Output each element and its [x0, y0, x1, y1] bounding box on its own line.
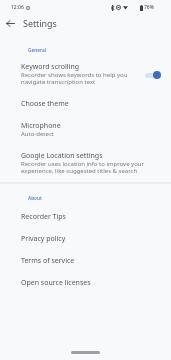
staticText: About	[28, 195, 42, 202]
staticText: Recorder Tips	[21, 212, 66, 222]
staticText: Settings	[23, 17, 57, 29]
button[interactable]: Open source licenses	[0, 272, 171, 294]
button[interactable]: Back	[1, 14, 19, 32]
button[interactable]: Terms of service	[0, 250, 171, 272]
staticText: Microphone	[21, 121, 61, 131]
staticText: Recorder shows keywords to help you navi…	[21, 71, 141, 86]
button[interactable]: Recorder Tips	[0, 202, 171, 228]
button[interactable]: Keyword scrolling	[0, 54, 171, 93]
staticText: 76%	[144, 4, 154, 11]
staticText: Terms of service	[21, 256, 75, 266]
staticText: General	[28, 47, 46, 54]
staticText: Open source licenses	[21, 278, 91, 288]
button[interactable]: Privacy policy	[0, 228, 171, 250]
button[interactable]: Choose theme	[0, 93, 171, 115]
button[interactable]: Microphone	[0, 115, 171, 145]
button[interactable]: Keyword scrolling toggle	[145, 69, 161, 81]
staticText: Google Location settings	[21, 151, 103, 161]
staticText: Auto-detect	[21, 130, 54, 138]
staticText: Recorder uses location info to improve y…	[21, 160, 161, 175]
staticText: Privacy policy	[21, 234, 66, 244]
staticText: 12:06	[11, 4, 24, 11]
staticText: Keyword scrolling	[21, 62, 80, 72]
staticText: Choose theme	[21, 99, 69, 109]
button[interactable]: Google Location settings	[0, 145, 171, 182]
